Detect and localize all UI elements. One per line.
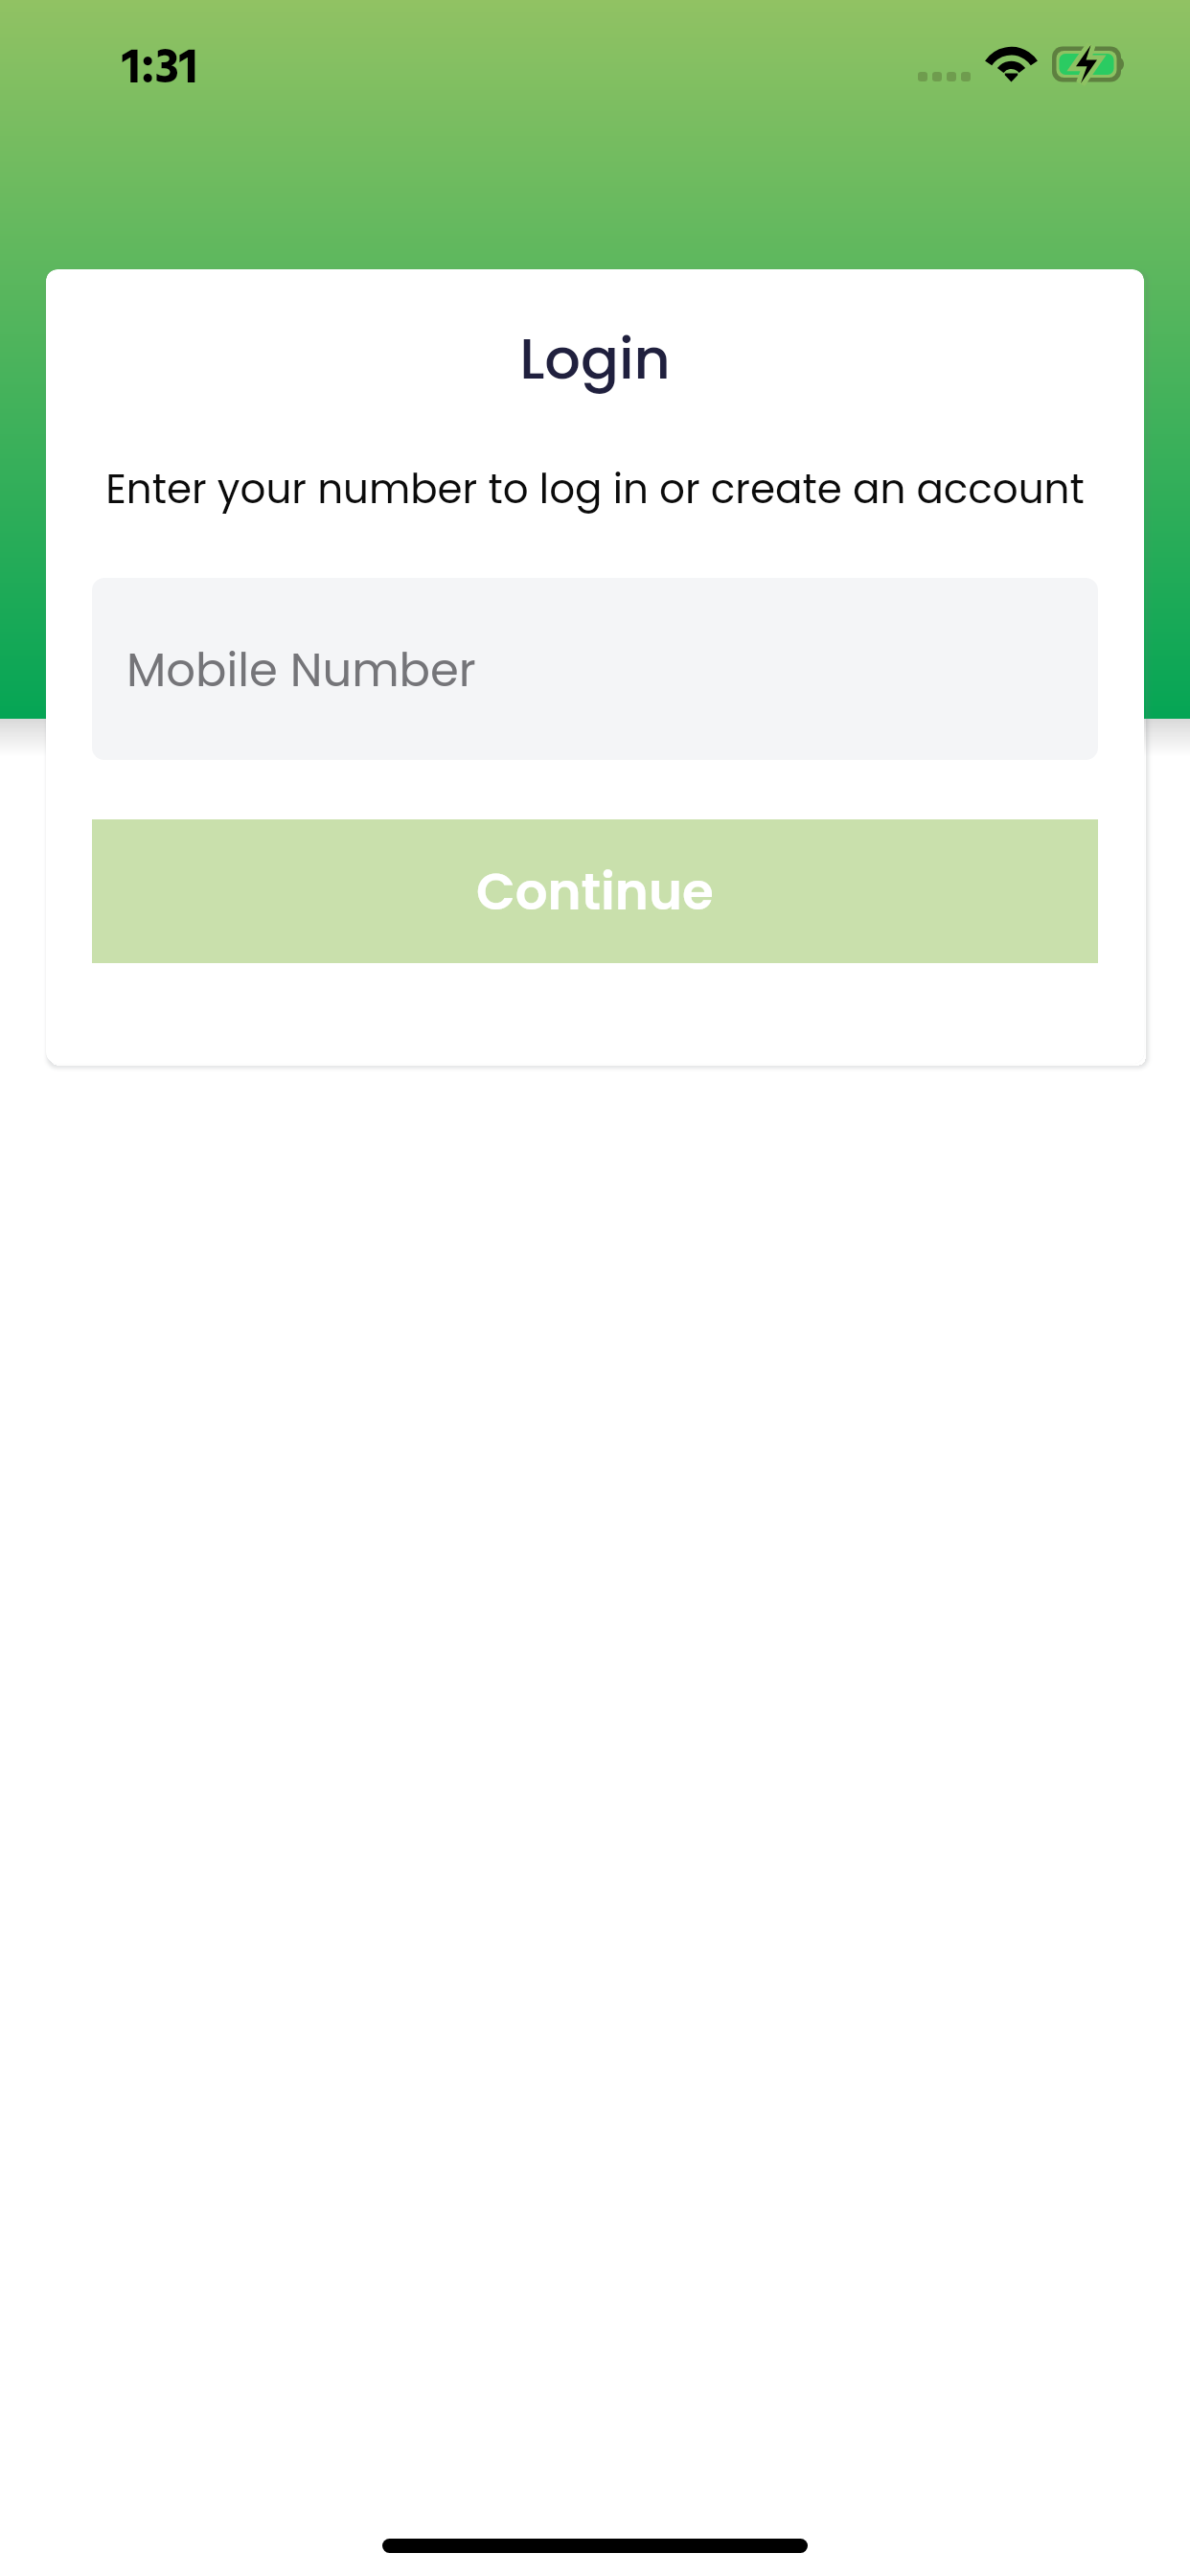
button[interactable]: Mobile Number (92, 578, 1098, 760)
other: Mobile signal (918, 72, 972, 81)
button[interactable]: Continue (92, 819, 1098, 963)
staticText: Enter your number to log in or create an… (0, 461, 1190, 517)
staticText: Mobile Number (126, 638, 476, 702)
other: Wi-Fi connected (981, 42, 1041, 88)
staticText: 1:31 (122, 30, 198, 109)
staticText: Login (46, 319, 1144, 399)
staticText: Continue (476, 856, 714, 927)
other: Battery charging (1048, 42, 1133, 86)
